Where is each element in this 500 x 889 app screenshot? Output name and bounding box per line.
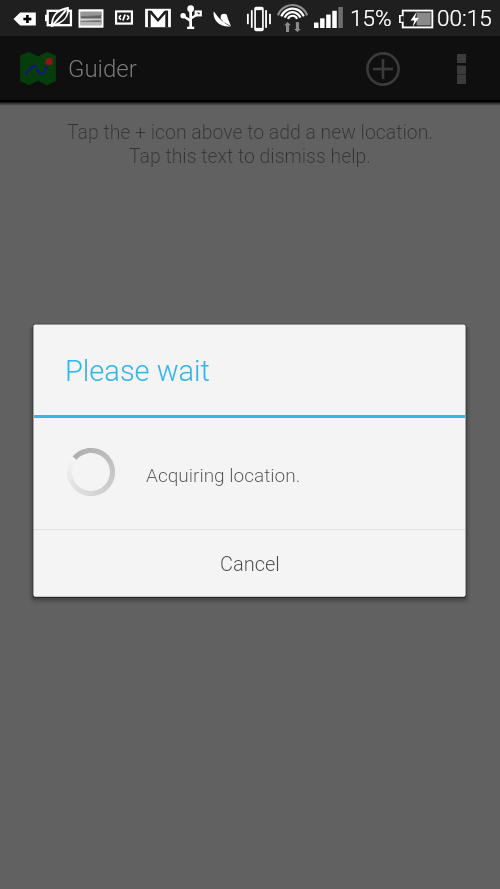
button[interactable]: Cancel (34, 530, 465, 596)
staticText: Cancel (220, 552, 280, 575)
button[interactable]: Add location (359, 45, 407, 93)
staticText: 15% (350, 5, 392, 31)
staticText: Tap the + icon above to add a new locati… (0, 121, 500, 168)
staticText: Guider (68, 55, 137, 83)
staticText: Acquiring location. (146, 464, 301, 486)
button[interactable]: More options (439, 47, 483, 91)
staticText: 00:15 (437, 5, 492, 31)
staticText: Please wait (65, 354, 210, 388)
button[interactable]: Tap the + icon above to add a new locati… (0, 121, 500, 168)
